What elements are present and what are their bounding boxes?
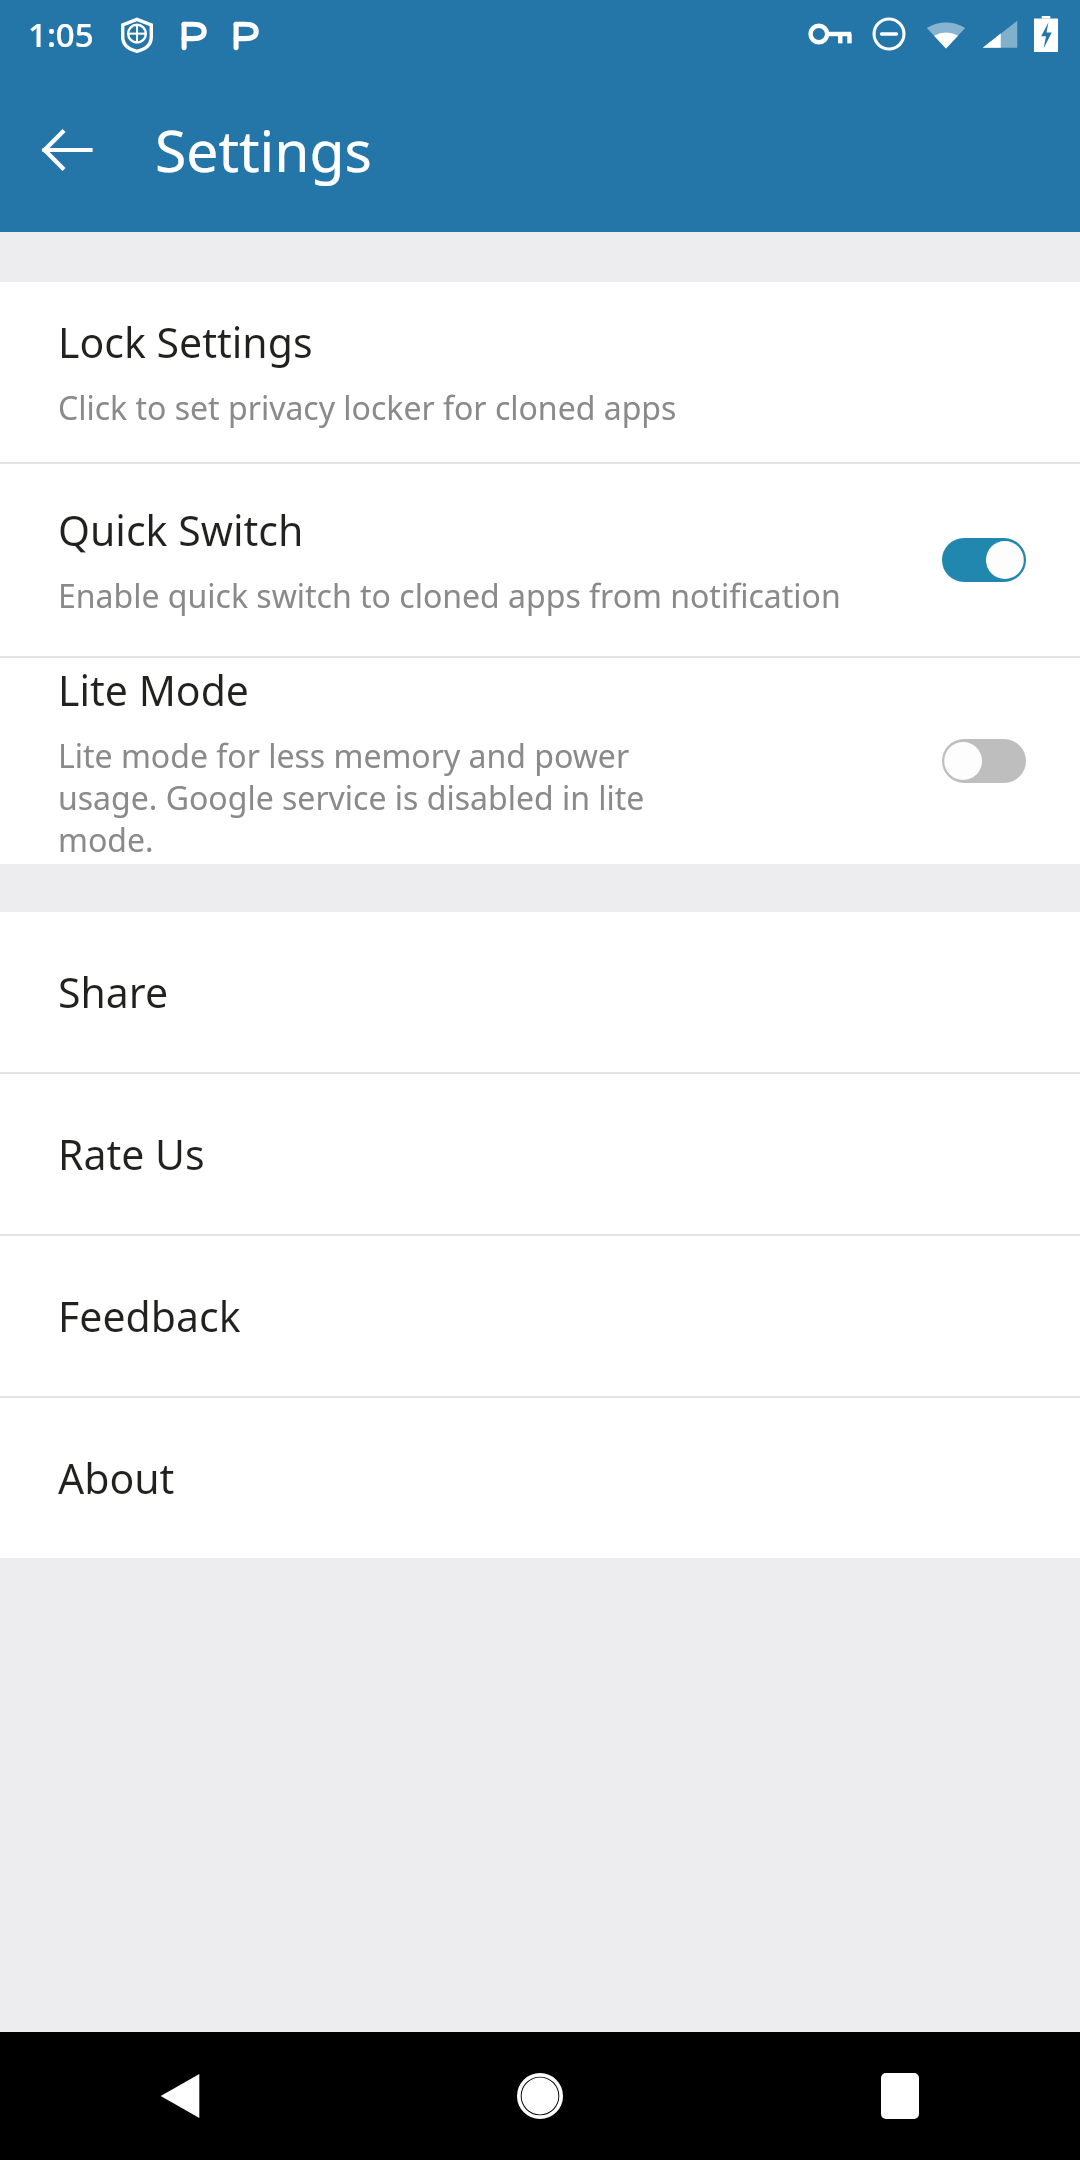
button[interactable]: Recent apps <box>720 2032 1080 2160</box>
staticText: Lock Settings <box>58 314 313 370</box>
button[interactable]: Back <box>24 107 110 193</box>
button[interactable]: Share <box>0 912 1080 1072</box>
staticText: Lite Mode <box>58 662 249 718</box>
button[interactable]: Toggle on <box>932 528 1036 592</box>
button[interactable]: Lite Mode <box>0 658 1080 864</box>
button[interactable]: Lock Settings <box>0 282 1080 462</box>
staticText: Share <box>58 964 169 1020</box>
staticText: Click to set privacy locker for cloned a… <box>58 386 677 430</box>
staticText: 1:05 <box>28 12 94 57</box>
staticText: Settings <box>155 111 372 189</box>
button[interactable]: About <box>0 1398 1080 1558</box>
button[interactable]: Quick Switch <box>0 464 1080 656</box>
button[interactable]: Toggle off <box>932 729 1036 793</box>
button[interactable]: Feedback <box>0 1236 1080 1396</box>
button[interactable]: Rate Us <box>0 1074 1080 1234</box>
staticText: Rate Us <box>58 1126 205 1182</box>
staticText: Lite mode for less memory and power usag… <box>58 734 708 861</box>
staticText: Enable quick switch to cloned apps from … <box>58 574 841 618</box>
button[interactable]: Home <box>360 2032 720 2160</box>
staticText: Quick Switch <box>58 502 304 558</box>
button[interactable]: Back <box>0 2032 360 2160</box>
staticText: Feedback <box>58 1288 241 1344</box>
staticText: About <box>58 1450 175 1506</box>
